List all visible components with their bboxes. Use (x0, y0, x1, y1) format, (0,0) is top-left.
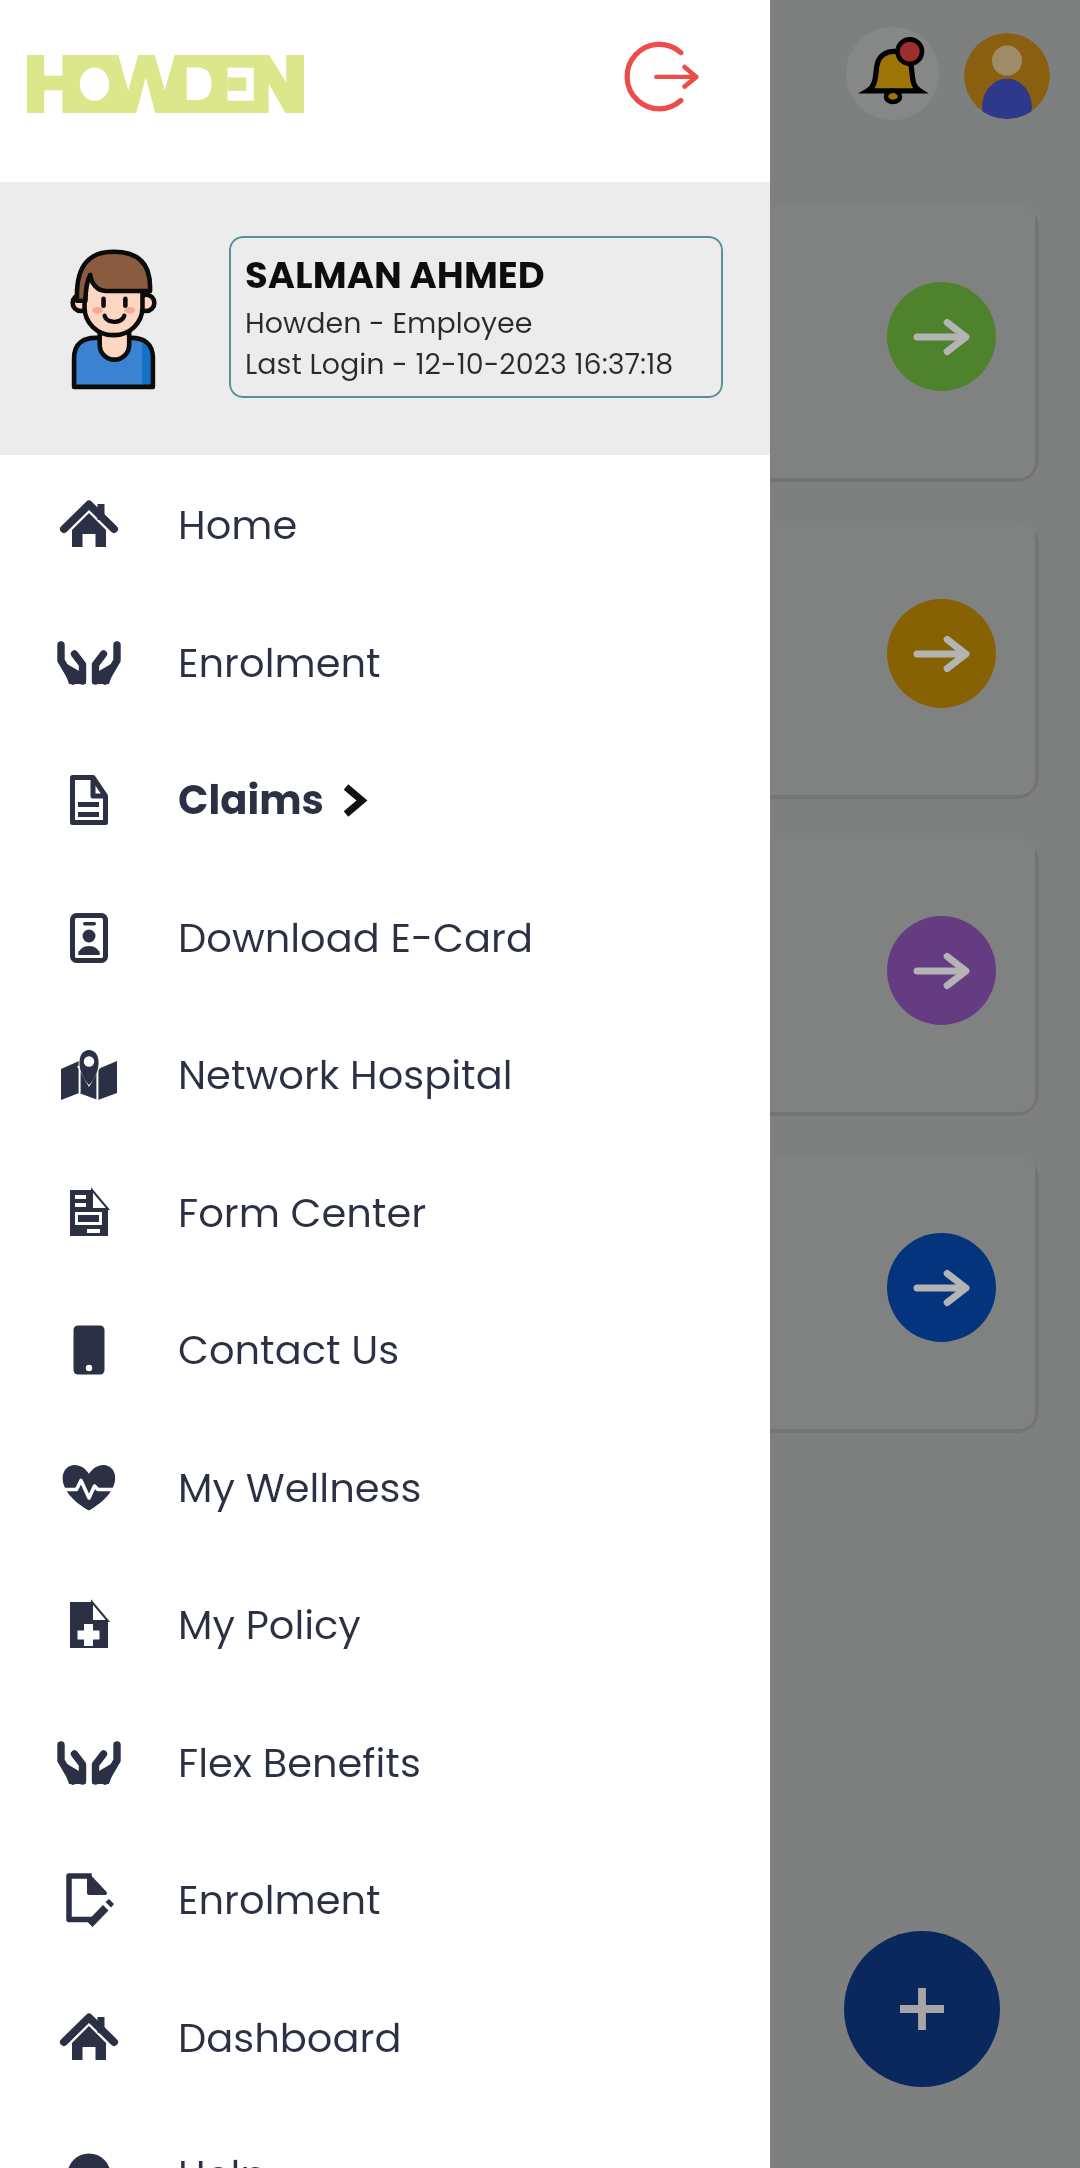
staticText: Claims (178, 772, 324, 828)
button[interactable]: Enrolment (0, 1831, 770, 1969)
staticText: Flex Benefits (178, 1735, 421, 1791)
button[interactable]: Home (0, 456, 770, 594)
staticText: My Policy (178, 1597, 361, 1653)
staticText: Form Center (178, 1185, 427, 1241)
button[interactable]: Profile (964, 33, 1050, 119)
staticText: SALMAN AHMED (245, 249, 545, 301)
button[interactable]: Enrolment (0, 594, 770, 732)
button[interactable]: Add (844, 1931, 1000, 2087)
staticText: Dashboard (178, 2010, 402, 2066)
button[interactable]: Download E-Card (0, 869, 770, 1007)
button[interactable]: Dashboard (0, 1969, 770, 2107)
button[interactable] (42, 522, 1039, 799)
staticText: My Wellness (178, 1460, 422, 1516)
button[interactable]: Help (0, 2106, 770, 2168)
button[interactable]: Notifications (846, 27, 939, 120)
button[interactable]: My Wellness (0, 1419, 770, 1557)
button[interactable]: Network Hospital (0, 1006, 770, 1144)
button[interactable]: Flex Benefits (0, 1694, 770, 1832)
staticText: Home (178, 497, 298, 553)
button[interactable]: My Policy (0, 1556, 770, 1694)
button[interactable]: Contact Us (0, 1281, 770, 1419)
staticText: Howden - Employee (245, 303, 533, 343)
staticText: Download E-Card (178, 910, 533, 966)
staticText: Last Login - 12-10-2023 16:37:18 (245, 344, 674, 384)
button[interactable] (42, 205, 1039, 482)
button[interactable] (42, 1156, 1039, 1433)
button[interactable]: Logout (608, 23, 712, 127)
staticText: Help (178, 2147, 268, 2168)
staticText: Network Hospital (178, 1047, 513, 1103)
staticText: Contact Us (178, 1322, 400, 1378)
button[interactable]: Claims (0, 731, 770, 869)
button[interactable] (42, 839, 1039, 1116)
staticText: Enrolment (178, 635, 381, 691)
staticText: Enrolment (178, 1872, 381, 1928)
button[interactable]: Form Center (0, 1144, 770, 1282)
